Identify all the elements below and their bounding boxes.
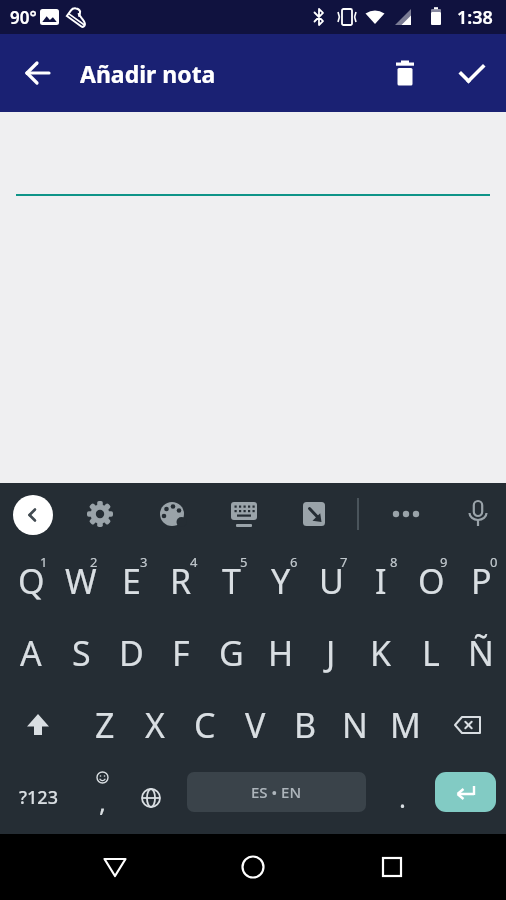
staticText: X — [145, 702, 165, 748]
button[interactable]: ES • EN — [187, 772, 366, 812]
button[interactable]: P — [456, 545, 506, 617]
button[interactable] — [392, 500, 420, 528]
button[interactable]: W — [56, 545, 106, 617]
button[interactable] — [430, 689, 506, 761]
staticText: 90° — [10, 6, 37, 29]
button[interactable] — [369, 844, 415, 890]
staticText: M — [390, 702, 421, 748]
button[interactable]: Y — [256, 545, 306, 617]
button[interactable] — [230, 500, 258, 528]
staticText: Z — [95, 702, 115, 748]
button[interactable] — [0, 689, 76, 761]
staticText: 5 — [240, 553, 248, 571]
button[interactable]: H — [256, 617, 306, 689]
staticText: K — [370, 630, 392, 676]
staticText: 3 — [140, 553, 148, 571]
button[interactable] — [92, 844, 138, 890]
staticText: Añadir nota — [80, 58, 216, 89]
button[interactable]: M — [380, 689, 430, 761]
button[interactable]: ?123 — [0, 761, 76, 834]
button[interactable]: O — [406, 545, 456, 617]
staticText: U — [319, 558, 344, 604]
button[interactable]: L — [406, 617, 456, 689]
button[interactable]: Q — [6, 545, 56, 617]
staticText: Ñ — [468, 630, 494, 676]
staticText: D — [119, 630, 144, 676]
button[interactable] — [158, 500, 186, 528]
staticText: V — [245, 702, 266, 748]
button[interactable] — [13, 495, 53, 535]
staticText: L — [422, 630, 440, 676]
button[interactable] — [383, 51, 427, 95]
staticText: O — [418, 558, 445, 604]
staticText: , — [99, 784, 106, 819]
button[interactable]: V — [230, 689, 280, 761]
staticText: 4 — [190, 553, 198, 571]
button[interactable]: G — [206, 617, 256, 689]
staticText: B — [294, 702, 317, 748]
staticText: 2 — [90, 553, 98, 571]
staticText: N — [342, 702, 368, 748]
button[interactable] — [450, 51, 494, 95]
button[interactable]: C — [180, 689, 230, 761]
staticText: R — [170, 558, 192, 604]
button[interactable]: B — [280, 689, 330, 761]
button[interactable]: I — [356, 545, 406, 617]
button[interactable]: T — [206, 545, 256, 617]
button[interactable]: K — [356, 617, 406, 689]
button[interactable]: Z — [80, 689, 130, 761]
staticText: 9 — [440, 553, 448, 571]
staticText: S — [72, 630, 91, 676]
button[interactable]: . — [372, 761, 432, 834]
staticText: W — [65, 558, 97, 604]
staticText: G — [219, 630, 244, 676]
button[interactable] — [435, 772, 496, 812]
staticText: F — [172, 630, 190, 676]
staticText: I — [375, 558, 387, 604]
button[interactable]: D — [106, 617, 156, 689]
button[interactable]: S — [56, 617, 106, 689]
staticText: 1:38 — [457, 5, 493, 30]
staticText: A — [20, 630, 42, 676]
button[interactable] — [464, 500, 492, 528]
button[interactable]: E — [106, 545, 156, 617]
button[interactable] — [128, 761, 174, 834]
staticText: C — [194, 702, 216, 748]
staticText: E — [122, 558, 141, 604]
staticText: . — [399, 780, 406, 815]
staticText: ES • EN — [251, 782, 302, 802]
staticText: T — [222, 558, 241, 604]
staticText: ?123 — [19, 785, 58, 810]
button[interactable]: A — [6, 617, 56, 689]
button[interactable]: N — [330, 689, 380, 761]
button[interactable] — [230, 844, 276, 890]
staticText: Y — [271, 558, 291, 604]
staticText: 1 — [40, 553, 48, 571]
button[interactable]: X — [130, 689, 180, 761]
staticText: 0 — [490, 553, 498, 571]
staticText: H — [268, 630, 294, 676]
staticText: J — [326, 630, 336, 676]
staticText: Q — [18, 558, 45, 604]
button[interactable]: Ñ — [456, 617, 506, 689]
button[interactable]: , — [77, 761, 128, 834]
button[interactable]: R — [156, 545, 206, 617]
staticText: P — [471, 558, 492, 604]
staticText: 8 — [390, 553, 398, 571]
button[interactable]: U — [306, 545, 356, 617]
button[interactable] — [16, 51, 60, 95]
button[interactable] — [300, 500, 328, 528]
staticText: 6 — [290, 553, 298, 571]
button[interactable]: F — [156, 617, 206, 689]
button[interactable] — [86, 500, 114, 528]
button[interactable]: J — [306, 617, 356, 689]
staticText: 7 — [340, 553, 348, 571]
